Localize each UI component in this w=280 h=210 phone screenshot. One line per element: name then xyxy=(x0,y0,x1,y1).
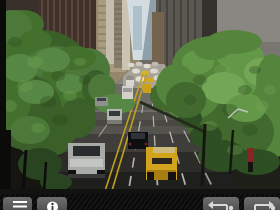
button[interactable] xyxy=(3,197,32,210)
button[interactable] xyxy=(244,197,280,210)
button[interactable] xyxy=(37,197,67,210)
button[interactable] xyxy=(203,197,239,210)
